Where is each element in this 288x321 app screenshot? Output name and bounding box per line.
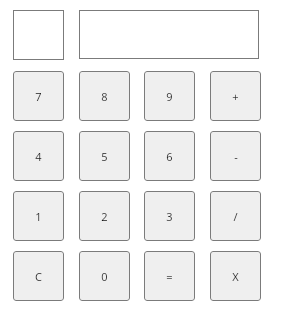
staticText: / [233, 209, 238, 224]
button[interactable]: 1 [13, 191, 64, 241]
button[interactable]: Operation indicator [13, 10, 64, 60]
button[interactable]: 5 [79, 131, 130, 181]
button[interactable]: 6 [144, 131, 195, 181]
button[interactable]: 7 [13, 71, 64, 121]
button[interactable]: Display [79, 10, 259, 59]
button[interactable]: 0 [79, 251, 130, 301]
staticText: 0 [101, 269, 108, 284]
staticText: - [234, 149, 238, 164]
button[interactable]: - [210, 131, 261, 181]
staticText: 9 [166, 89, 173, 104]
staticText: C [35, 269, 42, 284]
button[interactable]: 4 [13, 131, 64, 181]
button[interactable]: X [210, 251, 261, 301]
staticText: 8 [101, 89, 108, 104]
staticText: 7 [35, 89, 42, 104]
staticText: 3 [166, 209, 173, 224]
button[interactable]: / [210, 191, 261, 241]
staticText: 4 [35, 149, 42, 164]
button[interactable]: C [13, 251, 64, 301]
staticText: + [232, 89, 239, 104]
staticText: 1 [35, 209, 42, 224]
button[interactable]: 2 [79, 191, 130, 241]
button[interactable]: = [144, 251, 195, 301]
staticText: 6 [166, 149, 173, 164]
staticText: 2 [101, 209, 108, 224]
button[interactable]: + [210, 71, 261, 121]
button[interactable]: 8 [79, 71, 130, 121]
button[interactable]: 3 [144, 191, 195, 241]
button[interactable]: 9 [144, 71, 195, 121]
staticText: X [232, 269, 239, 284]
staticText: = [166, 269, 173, 284]
staticText: 5 [101, 149, 108, 164]
